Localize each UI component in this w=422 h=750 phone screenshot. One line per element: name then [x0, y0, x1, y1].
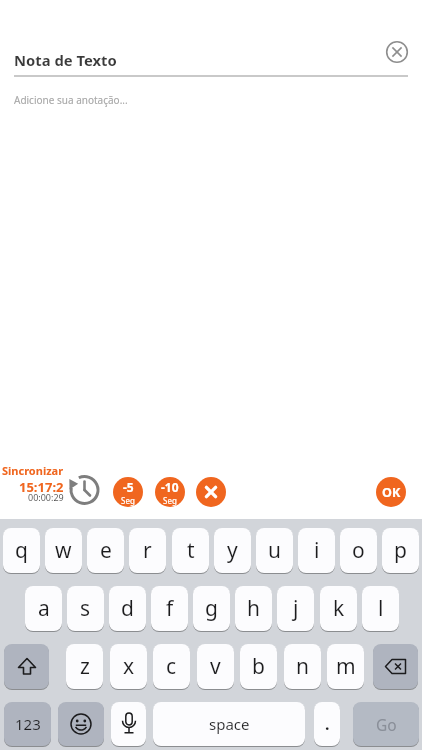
staticText: Adicione sua anotação... — [14, 93, 128, 107]
staticText: . — [325, 713, 330, 735]
button[interactable]: . — [314, 702, 340, 746]
staticText: -10 — [161, 479, 179, 495]
button[interactable]: u — [256, 528, 293, 573]
button[interactable] — [111, 702, 146, 746]
staticText: 15:17:2 — [19, 478, 64, 496]
button[interactable]: -5 — [113, 477, 143, 507]
button[interactable]: f — [151, 586, 188, 631]
staticText: b — [252, 652, 265, 681]
staticText: Nota de Texto — [14, 50, 117, 70]
button[interactable] — [384, 39, 410, 65]
button[interactable]: Sincronizar — [0, 463, 64, 508]
staticText: Sincronizar — [2, 463, 64, 478]
staticText: x — [123, 652, 135, 681]
button[interactable]: q — [3, 528, 40, 573]
staticText: h — [247, 594, 260, 623]
button[interactable]: -10 — [155, 477, 185, 507]
staticText: i — [314, 536, 320, 565]
button[interactable]: v — [197, 644, 234, 689]
staticText: a — [38, 594, 50, 623]
button[interactable]: 123 — [4, 702, 51, 746]
button[interactable]: d — [109, 586, 146, 631]
button[interactable]: a — [25, 586, 62, 631]
staticText: q — [15, 536, 28, 565]
staticText: Go — [376, 714, 397, 735]
button[interactable]: m — [327, 644, 364, 689]
button[interactable]: o — [340, 528, 377, 573]
staticText: m — [336, 652, 356, 681]
staticText: o — [352, 536, 365, 565]
button[interactable] — [373, 644, 418, 689]
staticText: 00:00:29 — [28, 491, 64, 503]
staticText: c — [166, 652, 177, 681]
button[interactable]: y — [214, 528, 251, 573]
staticText: u — [268, 536, 281, 565]
staticText: s — [80, 594, 91, 623]
staticText: k — [333, 594, 345, 623]
staticText: z — [80, 652, 90, 681]
staticText: n — [296, 652, 309, 681]
button[interactable]: p — [382, 528, 419, 573]
button[interactable]: z — [66, 644, 103, 689]
staticText: p — [394, 536, 407, 565]
staticText: Seg — [121, 495, 135, 506]
staticText: g — [205, 594, 218, 623]
button[interactable]: c — [153, 644, 190, 689]
button[interactable]: l — [362, 586, 399, 631]
staticText: space — [209, 714, 250, 734]
staticText: j — [293, 594, 299, 623]
staticText: f — [166, 594, 174, 623]
button[interactable]: w — [45, 528, 82, 573]
button[interactable]: Go — [353, 702, 419, 746]
staticText: w — [55, 536, 72, 565]
button[interactable]: n — [284, 644, 321, 689]
button[interactable]: s — [67, 586, 104, 631]
button[interactable]: b — [240, 644, 277, 689]
button[interactable]: e — [87, 528, 124, 573]
staticText: 123 — [15, 714, 41, 734]
button[interactable]: r — [129, 528, 166, 573]
button[interactable]: space — [153, 702, 305, 746]
button[interactable]: j — [277, 586, 314, 631]
button[interactable]: g — [193, 586, 230, 631]
staticText: r — [143, 536, 152, 565]
staticText: t — [187, 536, 195, 565]
button[interactable]: k — [320, 586, 357, 631]
button[interactable]: OK — [376, 477, 406, 507]
staticText: Seg — [163, 495, 177, 506]
button[interactable] — [58, 702, 104, 746]
button[interactable]: i — [298, 528, 335, 573]
staticText: e — [100, 536, 112, 565]
button[interactable] — [196, 477, 226, 507]
button[interactable]: x — [110, 644, 147, 689]
button[interactable]: h — [235, 586, 272, 631]
staticText: l — [378, 594, 384, 623]
staticText: OK — [382, 484, 401, 501]
staticText: -5 — [123, 479, 134, 495]
button[interactable] — [4, 644, 49, 689]
staticText: d — [121, 594, 134, 623]
staticText: y — [227, 536, 238, 565]
button[interactable]: t — [172, 528, 209, 573]
staticText: v — [210, 652, 221, 681]
